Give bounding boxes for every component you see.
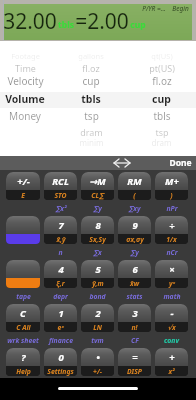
button[interactable]: ×: [155, 260, 188, 288]
staticText: P/YR =...: [142, 4, 166, 13]
staticText: Help: [16, 367, 31, 376]
staticText: −: [170, 307, 174, 320]
button[interactable]: Done: [169, 157, 192, 169]
staticText: •: [96, 351, 100, 364]
staticText: →M: [89, 175, 106, 188]
button[interactable]: Swap units: [109, 156, 135, 170]
button[interactable]: →M: [81, 172, 114, 200]
staticText: ∑x²: [55, 204, 67, 213]
staticText: dram: [80, 126, 103, 138]
staticText: n: [58, 248, 63, 257]
staticText: C: [20, 307, 26, 320]
button[interactable]: M+: [155, 172, 188, 200]
button[interactable]: +/-: [6, 172, 40, 200]
staticText: (: [133, 191, 136, 200]
button[interactable]: [6, 260, 40, 288]
button[interactable]: +: [155, 348, 188, 376]
button[interactable]: ?: [6, 348, 40, 376]
button[interactable]: 3: [118, 304, 151, 332]
staticText: Settings: [47, 367, 74, 376]
staticText: nPr: [166, 204, 178, 213]
button[interactable]: −: [155, 304, 188, 332]
button[interactable]: 9: [118, 216, 151, 244]
staticText: cup: [152, 92, 171, 106]
staticText: +/-: [93, 367, 102, 376]
button[interactable]: =: [118, 348, 151, 376]
staticText: CL∑: [91, 191, 104, 200]
staticText: ξ,r: [56, 279, 65, 288]
staticText: cup: [130, 19, 146, 31]
button[interactable]: 7: [44, 216, 77, 244]
button[interactable]: fl.oz: [50, 60, 132, 76]
staticText: minim: [79, 137, 104, 148]
staticText: yˣ: [169, 279, 175, 288]
button[interactable]: Velocity: [0, 73, 50, 89]
staticText: ŷ,m: [92, 279, 104, 288]
staticText: fl.oz: [152, 74, 172, 88]
staticText: stats: [126, 292, 143, 301]
staticText: ∑x: [93, 248, 102, 257]
button[interactable]: 1: [44, 304, 77, 332]
button[interactable]: cup: [132, 91, 191, 107]
staticText: pt(US): [149, 62, 175, 74]
button[interactable]: tsp: [50, 108, 132, 124]
button[interactable]: pt(US): [132, 60, 191, 76]
staticText: √x: [167, 323, 176, 332]
staticText: finance: [49, 336, 73, 345]
button[interactable]: 5: [81, 260, 114, 288]
button[interactable]: Money: [0, 108, 50, 124]
button[interactable]: •: [81, 348, 114, 376]
button[interactable]: cup: [50, 73, 132, 89]
staticText: +: [169, 351, 175, 364]
button[interactable]: 0: [44, 348, 77, 376]
button[interactable]: 2: [81, 304, 114, 332]
staticText: Velocity: [7, 74, 44, 88]
staticText: math: [163, 292, 181, 301]
button[interactable]: RCL: [44, 172, 77, 200]
staticText: RM: [127, 175, 142, 188]
staticText: nCr: [166, 248, 178, 257]
button[interactable]: dram: [132, 134, 191, 150]
staticText: tape: [16, 292, 31, 301]
staticText: 9: [132, 219, 138, 232]
staticText: ∑y: [130, 248, 139, 257]
button[interactable]: RM: [118, 172, 151, 200]
button[interactable]: tsp: [132, 124, 191, 140]
staticText: bond: [89, 292, 106, 301]
staticText: STO: [54, 191, 67, 200]
staticText: ): [170, 191, 173, 200]
button[interactable]: 6: [118, 260, 151, 288]
button[interactable]: C: [6, 304, 40, 332]
staticText: x²: [168, 367, 175, 376]
button[interactable]: dram: [50, 124, 132, 140]
button[interactable]: 4: [44, 260, 77, 288]
button[interactable]: Time: [0, 60, 50, 76]
staticText: ÷: [169, 219, 175, 232]
staticText: 1/x: [166, 235, 177, 244]
staticText: ∑y: [93, 204, 102, 213]
button[interactable]: [6, 216, 40, 244]
button[interactable]: tbls: [132, 108, 191, 124]
staticText: eˣ: [57, 323, 64, 332]
staticText: tsp: [155, 126, 169, 138]
staticText: n!: [131, 323, 138, 332]
staticText: depr: [53, 292, 68, 301]
button[interactable]: Volume: [0, 91, 50, 107]
staticText: =2.00: [75, 7, 129, 36]
staticText: ∑xy: [128, 204, 141, 213]
button[interactable]: ÷: [155, 216, 188, 244]
button[interactable]: tbls: [50, 91, 132, 107]
staticText: CF: [131, 336, 139, 345]
button[interactable]: minim: [50, 134, 132, 150]
button[interactable]: 8: [81, 216, 114, 244]
staticText: Money: [9, 109, 41, 123]
button[interactable]: fl.oz: [132, 73, 191, 89]
staticText: dram: [151, 137, 172, 148]
staticText: 6: [132, 263, 138, 276]
staticText: x̄,ȳ: [56, 235, 66, 244]
staticText: LN: [93, 323, 102, 332]
staticText: DISP: [127, 367, 142, 376]
